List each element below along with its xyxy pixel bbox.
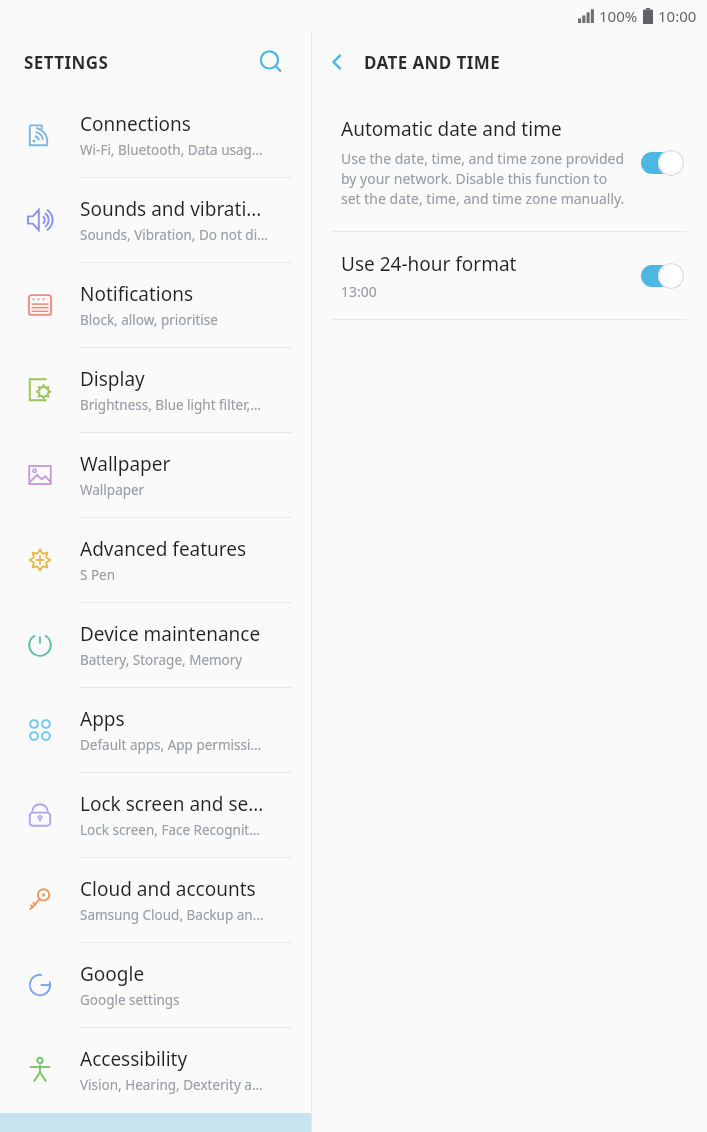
staticText: Vision, Hearing, Dexterity a…: [80, 1076, 263, 1094]
button[interactable]: Advanced features: [0, 518, 311, 602]
staticText: Automatic date and time: [341, 116, 562, 142]
button[interactable]: Apps: [0, 688, 311, 772]
button[interactable]: Google: [0, 943, 311, 1027]
staticText: Device maintenance: [80, 621, 261, 647]
staticText: DATE AND TIME: [364, 51, 501, 74]
staticText: Display: [80, 366, 145, 392]
staticText: 100%: [599, 6, 638, 26]
staticText: Use 24-hour format: [341, 251, 517, 277]
button[interactable]: Back: [312, 31, 364, 93]
staticText: 10:00: [658, 6, 697, 26]
staticText: Google: [80, 961, 145, 987]
staticText: Advanced features: [80, 536, 247, 562]
staticText: Sounds, Vibration, Do not di…: [80, 226, 268, 244]
staticText: Default apps, App permissi…: [80, 736, 262, 754]
staticText: Wallpaper: [80, 451, 171, 477]
staticText: Lock screen, Face Recognit…: [80, 821, 260, 839]
button[interactable]: Automatic date and time: [312, 93, 707, 231]
staticText: S Pen: [80, 566, 116, 584]
staticText: Sounds and vibrati…: [80, 196, 262, 222]
staticText: Brightness, Blue light filter,…: [80, 396, 261, 414]
staticText: Notifications: [80, 281, 194, 307]
staticText: Block, allow, prioritise: [80, 311, 218, 329]
staticText: Lock screen and se…: [80, 791, 264, 817]
staticText: SETTINGS: [24, 51, 109, 74]
staticText: Samsung Cloud, Backup an…: [80, 906, 264, 924]
button[interactable]: Sounds and vibrati…: [0, 178, 311, 262]
staticText: Battery, Storage, Memory: [80, 651, 243, 669]
button[interactable]: Accessibility: [0, 1028, 311, 1112]
staticText: Wi-Fi, Bluetooth, Data usag…: [80, 141, 263, 159]
button[interactable]: Wallpaper: [0, 433, 311, 517]
staticText: 13:00: [341, 282, 377, 301]
button[interactable]: Use 24-hour format: [312, 232, 707, 319]
staticText: Google settings: [80, 991, 180, 1009]
staticText: Use the date, time, and time zone provid…: [341, 149, 629, 208]
staticText: Cloud and accounts: [80, 876, 256, 902]
staticText: Wallpaper: [80, 481, 145, 499]
button[interactable]: Cloud and accounts: [0, 858, 311, 942]
staticText: Connections: [80, 111, 191, 137]
staticText: Apps: [80, 706, 125, 732]
staticText: Accessibility: [80, 1046, 188, 1072]
button[interactable]: [641, 149, 685, 176]
button[interactable]: Notifications: [0, 263, 311, 347]
button[interactable]: Display: [0, 348, 311, 432]
button[interactable]: Connections: [0, 93, 311, 177]
button[interactable]: Device maintenance: [0, 603, 311, 687]
button[interactable]: Lock screen and se…: [0, 773, 311, 857]
button[interactable]: Search: [247, 38, 295, 86]
button[interactable]: [641, 262, 685, 289]
